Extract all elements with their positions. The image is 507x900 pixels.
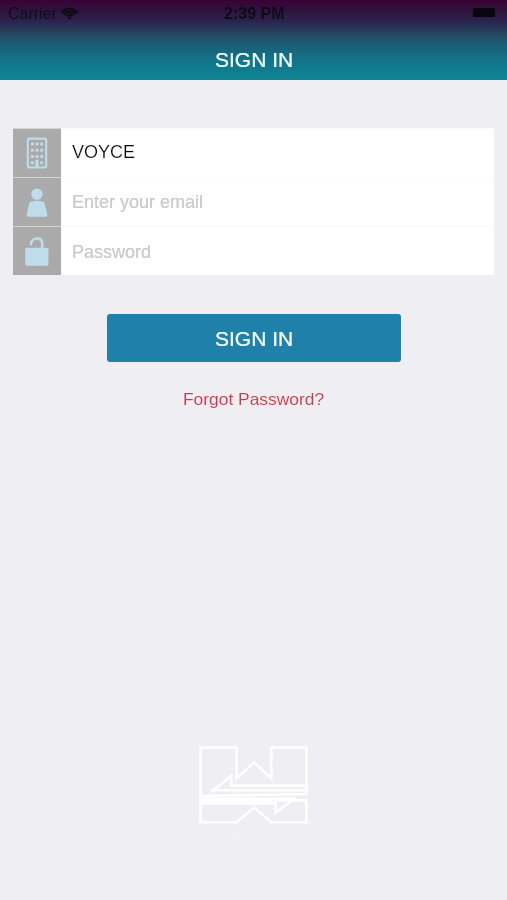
- staticText: 2:39 PM: [224, 5, 285, 23]
- staticText: SIGN IN: [215, 48, 294, 71]
- staticText: Enter your email: [72, 192, 204, 212]
- button[interactable]: Password: [13, 226, 494, 275]
- staticText: SIGN IN: [215, 327, 294, 350]
- staticText: VOYCE: [72, 142, 136, 162]
- button[interactable]: VOYCE: [13, 128, 494, 177]
- button[interactable]: SIGN IN: [107, 314, 401, 362]
- staticText: Carrier: [8, 5, 57, 23]
- button[interactable]: Enter your email: [13, 177, 494, 226]
- button[interactable]: Forgot Password?: [173, 387, 335, 410]
- staticText: Forgot Password?: [183, 389, 325, 408]
- staticText: Password: [72, 242, 152, 262]
